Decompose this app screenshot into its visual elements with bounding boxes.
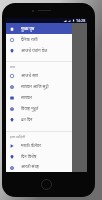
button[interactable]: आजचे सण [6, 70, 72, 81]
button[interactable]: Home [41, 179, 52, 190]
staticText: आजचे पंचांग वेळ [21, 48, 48, 54]
staticText: सणवार आणि सुट्टी [21, 84, 49, 90]
staticText: व्रत दिन [21, 117, 33, 123]
button[interactable]: सणवार [6, 92, 72, 103]
button[interactable]: दैनिक राशी [6, 34, 72, 45]
staticText: सण [10, 64, 16, 69]
staticText: इतर माहिती [10, 134, 26, 139]
staticText: दिन विशेष [21, 154, 37, 160]
staticText: आजचे सण [21, 73, 38, 79]
button[interactable]: सणवार आणि सुट्टी [6, 81, 72, 92]
staticText: मुख्य पृष्ठ [21, 26, 35, 32]
button[interactable]: दिन विशेष [6, 151, 72, 162]
button[interactable]: आरती संग्रह [6, 162, 72, 172]
staticText: सणवार [21, 95, 32, 101]
button[interactable]: विवाह मुहूर्त [6, 103, 72, 114]
staticText: 14:28 [76, 18, 86, 23]
button[interactable]: मुख्य पृष्ठ [6, 23, 72, 34]
staticText: दैनिक राशी [21, 37, 38, 43]
staticText: मराठी कॅलेंडर [21, 143, 41, 149]
button[interactable]: मराठी कॅलेंडर [6, 140, 72, 151]
button[interactable]: आजचे पंचांग वेळ [6, 45, 72, 56]
staticText: आरती संग्रह [21, 164, 39, 170]
staticText: विवाह मुहूर्त [21, 106, 39, 112]
button[interactable]: व्रत दिन [6, 114, 72, 125]
